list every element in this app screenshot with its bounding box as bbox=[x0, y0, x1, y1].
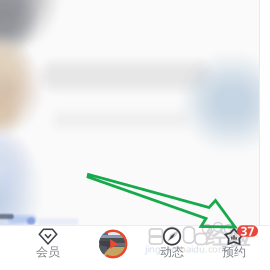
staticText: 预约 bbox=[222, 245, 246, 259]
staticText: 37 bbox=[240, 223, 254, 239]
staticText: 会员 bbox=[36, 245, 60, 259]
button[interactable]: 直播 bbox=[93, 224, 133, 264]
button[interactable]: 预约 bbox=[207, 223, 261, 263]
button[interactable]: 动态 bbox=[145, 223, 199, 263]
staticText: 动态 bbox=[160, 245, 184, 259]
staticText: jingyan.baidu.com bbox=[145, 243, 227, 255]
staticText: 经验 bbox=[205, 223, 251, 251]
button[interactable]: 会员 bbox=[21, 223, 75, 263]
